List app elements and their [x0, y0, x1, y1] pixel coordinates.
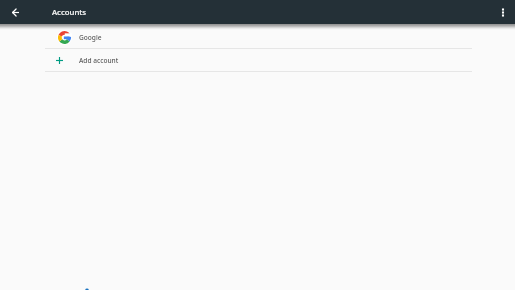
- staticText: Accounts: [52, 7, 87, 18]
- button[interactable]: Navigate up: [4, 2, 25, 23]
- button[interactable]: Google: [0, 26, 515, 49]
- button[interactable]: Add account: [0, 49, 515, 72]
- button[interactable]: More options: [491, 2, 512, 23]
- staticText: Google: [79, 33, 102, 42]
- staticText: Add account: [79, 56, 119, 65]
